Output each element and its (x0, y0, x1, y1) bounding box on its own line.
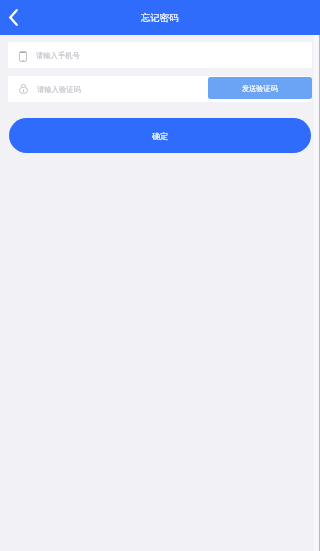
button[interactable]: 请输入验证码 (8, 76, 312, 102)
staticText: 请输入手机号 (36, 51, 80, 60)
button[interactable]: Back (0, 0, 26, 35)
staticText: 发送验证码 (242, 84, 278, 93)
staticText: 请输入验证码 (37, 85, 81, 94)
staticText: 确定 (152, 131, 169, 141)
staticText: 忘记密码 (141, 12, 179, 24)
button[interactable]: 请输入手机号 (8, 42, 312, 68)
button[interactable]: 发送验证码 (208, 77, 312, 99)
button[interactable]: 确定 (9, 118, 311, 153)
